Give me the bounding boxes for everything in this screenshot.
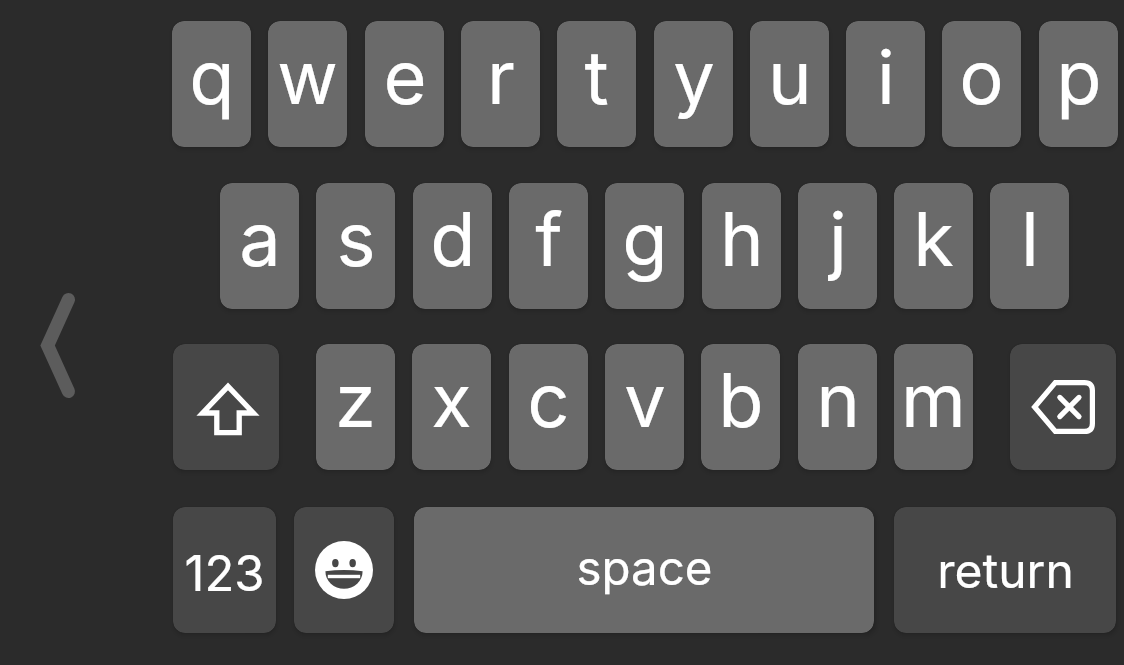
staticText: c xyxy=(527,355,570,445)
button[interactable]: o xyxy=(942,21,1021,147)
staticText: k xyxy=(913,194,954,284)
button[interactable]: Back xyxy=(41,293,75,398)
staticText: t xyxy=(584,32,609,122)
staticText: q xyxy=(189,32,235,122)
button[interactable]: Backspace xyxy=(1010,344,1116,470)
button[interactable]: r xyxy=(461,21,540,147)
staticText: y xyxy=(673,32,715,122)
button[interactable]: c xyxy=(509,344,588,470)
staticText: s xyxy=(336,194,376,284)
staticText: z xyxy=(335,355,376,445)
button[interactable]: h xyxy=(702,183,781,309)
button[interactable]: return xyxy=(894,507,1116,633)
button[interactable]: Emoji xyxy=(294,507,394,633)
staticText: j xyxy=(829,194,847,284)
button[interactable]: v xyxy=(605,344,684,470)
button[interactable]: j xyxy=(798,183,877,309)
staticText: w xyxy=(277,32,338,122)
button[interactable]: x xyxy=(412,344,491,470)
button[interactable]: p xyxy=(1039,21,1118,147)
staticText: m xyxy=(901,355,966,445)
button[interactable]: d xyxy=(413,183,492,309)
button[interactable]: Shift xyxy=(173,344,279,470)
staticText: o xyxy=(959,32,1004,122)
button[interactable]: i xyxy=(846,21,925,147)
button[interactable]: z xyxy=(316,344,395,470)
button[interactable]: y xyxy=(654,21,733,147)
staticText: d xyxy=(430,194,476,284)
staticText: n xyxy=(816,355,860,445)
button[interactable]: w xyxy=(268,21,347,147)
staticText: 123 xyxy=(184,544,265,603)
staticText: u xyxy=(768,32,812,122)
staticText: i xyxy=(877,32,895,122)
staticText: x xyxy=(431,355,472,445)
button[interactable]: f xyxy=(509,183,588,309)
staticText: space xyxy=(576,539,713,596)
button[interactable]: a xyxy=(220,183,299,309)
staticText: f xyxy=(535,194,563,284)
staticText: r xyxy=(487,32,515,122)
button[interactable]: space xyxy=(414,507,874,633)
button[interactable]: t xyxy=(557,21,636,147)
button[interactable]: 123 xyxy=(173,507,276,633)
staticText: e xyxy=(383,32,427,122)
button[interactable]: k xyxy=(894,183,973,309)
staticText: a xyxy=(239,194,281,284)
button[interactable]: n xyxy=(798,344,877,470)
button[interactable]: u xyxy=(750,21,829,147)
button[interactable]: l xyxy=(990,183,1069,309)
button[interactable]: b xyxy=(701,344,780,470)
button[interactable]: e xyxy=(365,21,444,147)
staticText: g xyxy=(622,194,668,284)
staticText: p xyxy=(1056,32,1102,122)
staticText: h xyxy=(720,194,764,284)
staticText: b xyxy=(718,355,764,445)
staticText: v xyxy=(624,355,666,445)
button[interactable]: g xyxy=(605,183,684,309)
button[interactable]: m xyxy=(894,344,973,470)
staticText: l xyxy=(1021,194,1039,284)
button[interactable]: q xyxy=(172,21,251,147)
button[interactable]: s xyxy=(316,183,395,309)
staticText: return xyxy=(937,541,1074,599)
